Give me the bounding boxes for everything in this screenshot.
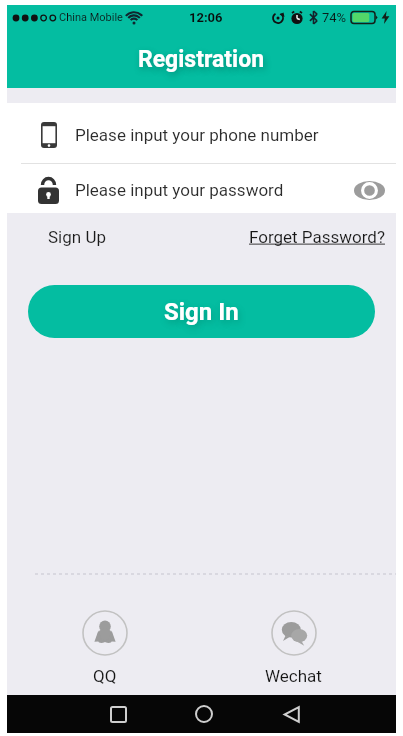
button[interactable]: Sign Up xyxy=(48,227,106,247)
staticText: Registration xyxy=(138,46,265,73)
button[interactable] xyxy=(99,695,137,733)
button[interactable]: Forget Password? xyxy=(249,227,385,247)
button[interactable]: Wechat xyxy=(265,610,322,686)
button[interactable]: Sign In xyxy=(28,285,375,338)
button[interactable] xyxy=(185,695,223,733)
staticText: Sign In xyxy=(164,298,239,326)
staticText: 74% xyxy=(322,10,347,25)
staticText: 12:06 xyxy=(189,10,223,25)
staticText: China Mobile xyxy=(59,11,123,24)
button[interactable]: Please input your password xyxy=(7,166,396,213)
staticText: Sign Up xyxy=(48,227,106,247)
button[interactable] xyxy=(272,695,310,733)
button[interactable]: Please input your phone number xyxy=(7,107,396,163)
staticText: Please input your password xyxy=(75,180,284,200)
staticText: Wechat xyxy=(265,666,322,686)
button[interactable] xyxy=(347,170,391,210)
button[interactable]: QQ xyxy=(82,610,128,686)
staticText: Forget Password? xyxy=(249,227,385,247)
staticText: QQ xyxy=(93,666,117,686)
staticText: Please input your phone number xyxy=(75,125,319,145)
